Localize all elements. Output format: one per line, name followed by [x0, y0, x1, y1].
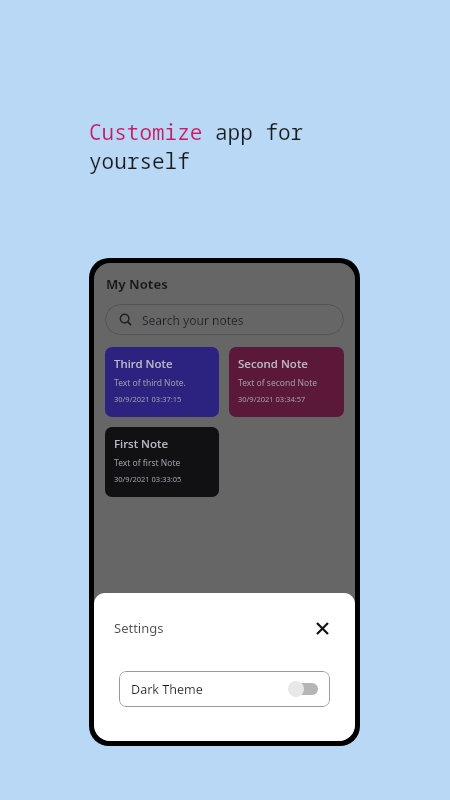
- staticText: Text of first Note: [114, 457, 181, 469]
- button[interactable]: First Note: [105, 427, 219, 497]
- staticText: Customize app for: [89, 118, 304, 147]
- button[interactable]: Search your notes: [105, 304, 344, 335]
- staticText: My Notes: [106, 275, 168, 293]
- staticText: Dark Theme: [131, 681, 203, 698]
- staticText: Text of third Note.: [114, 377, 186, 389]
- staticText: Settings: [114, 619, 164, 637]
- staticText: Search your notes: [142, 312, 244, 328]
- staticText: yourself: [89, 147, 190, 176]
- staticText: 30/9/2021 03:33:05: [114, 474, 182, 484]
- button[interactable]: Second Note: [229, 347, 344, 417]
- staticText: 30/9/2021 03:37:15: [114, 394, 182, 404]
- staticText: Third Note: [114, 356, 173, 372]
- staticText: Second Note: [238, 356, 308, 372]
- staticText: Text of second Note: [238, 377, 318, 389]
- staticText: 30/9/2021 03:34:57: [238, 394, 306, 404]
- button[interactable]: Dark Theme: [119, 671, 330, 707]
- button[interactable]: Third Note: [105, 347, 219, 417]
- staticText: First Note: [114, 436, 168, 452]
- button[interactable]: Close settings: [309, 615, 335, 641]
